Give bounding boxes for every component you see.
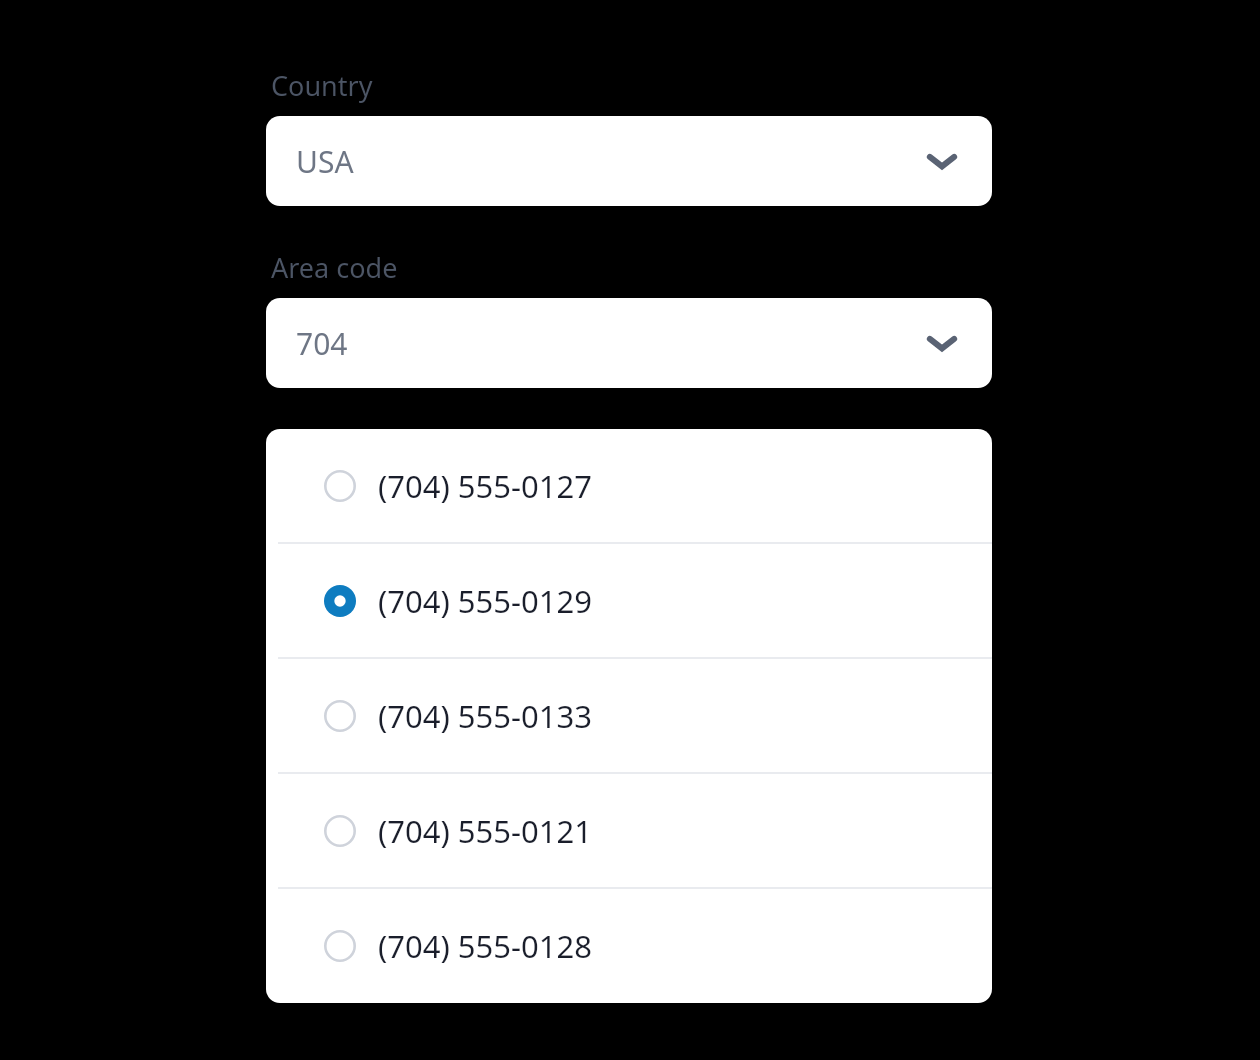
- staticText: Country: [271, 67, 373, 104]
- staticText: (704) 555-0129: [378, 580, 592, 622]
- staticText: USA: [296, 141, 354, 182]
- button[interactable]: (704) 555-0127: [266, 429, 992, 542]
- button[interactable]: (704) 555-0121: [266, 774, 992, 887]
- button[interactable]: Country selector: [266, 116, 992, 206]
- staticText: 704: [296, 323, 348, 364]
- staticText: (704) 555-0127: [378, 465, 592, 507]
- staticText: (704) 555-0133: [378, 695, 592, 737]
- staticText: Area code: [271, 249, 398, 286]
- button[interactable]: (704) 555-0128: [266, 889, 992, 1002]
- button[interactable]: Area code selector: [266, 298, 992, 388]
- staticText: (704) 555-0128: [378, 925, 592, 967]
- staticText: (704) 555-0121: [378, 810, 592, 852]
- button[interactable]: (704) 555-0133: [266, 659, 992, 772]
- button[interactable]: (704) 555-0129: [266, 544, 992, 657]
